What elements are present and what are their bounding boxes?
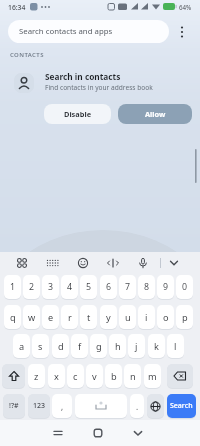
button[interactable]: 0 [176, 275, 193, 299]
button[interactable]: 1 [4, 275, 21, 299]
button[interactable] [147, 394, 164, 418]
button[interactable]: j [128, 334, 145, 358]
staticText: b [111, 370, 117, 383]
button[interactable]: c [67, 364, 84, 388]
button[interactable]: Disable [44, 104, 111, 124]
staticText: n [130, 370, 136, 383]
button[interactable]: q [4, 305, 21, 329]
button[interactable] [104, 254, 122, 272]
button[interactable] [88, 423, 108, 443]
staticText: 16:34 [8, 3, 26, 12]
staticText: h [115, 340, 121, 353]
staticText: r [68, 311, 72, 324]
button[interactable]: w [23, 305, 40, 329]
button[interactable]: 7 [119, 275, 136, 299]
staticText: x [54, 370, 59, 383]
button[interactable]: m [144, 364, 161, 388]
button[interactable]: 6 [100, 275, 117, 299]
staticText: i [145, 311, 148, 324]
staticText: l [174, 340, 177, 353]
staticText: 6 [106, 281, 112, 293]
button[interactable] [176, 25, 188, 39]
staticText: d [58, 340, 64, 353]
staticText: j [135, 340, 138, 353]
button[interactable] [43, 254, 61, 272]
button[interactable]: 2 [23, 275, 40, 299]
button[interactable]: n [124, 364, 141, 388]
button[interactable]: 3 [42, 275, 59, 299]
button[interactable]: a [13, 334, 30, 358]
button[interactable]: h [109, 334, 126, 358]
button[interactable] [2, 364, 25, 388]
button[interactable] [13, 254, 31, 272]
staticText: g [96, 340, 102, 353]
button[interactable]: 5 [80, 275, 97, 299]
button[interactable]: y [100, 305, 117, 329]
button[interactable] [167, 364, 193, 388]
staticText: 4 [67, 281, 73, 293]
button[interactable]: !?# [3, 394, 25, 418]
button[interactable]: d [52, 334, 69, 358]
staticText: 9 [163, 281, 169, 293]
button[interactable]: u [119, 305, 136, 329]
staticText: Search [170, 401, 193, 411]
button[interactable]: 123 [28, 394, 50, 418]
button[interactable]: o [157, 305, 174, 329]
staticText: k [154, 340, 159, 353]
button[interactable]: r [61, 305, 78, 329]
button[interactable]: l [167, 334, 184, 358]
staticText: s [38, 340, 43, 353]
staticText: u [125, 311, 131, 324]
button[interactable]: 4 [61, 275, 78, 299]
staticText: 1 [10, 281, 16, 293]
staticText: a [19, 340, 25, 353]
staticText: Allow [145, 109, 166, 119]
button[interactable]: g [90, 334, 107, 358]
button[interactable]: v [86, 364, 103, 388]
staticText: m [148, 370, 157, 383]
staticText: 7 [125, 281, 131, 293]
button[interactable]: Allow [118, 104, 192, 124]
button[interactable]: b [105, 364, 122, 388]
button[interactable]: 9 [157, 275, 174, 299]
staticText: 64% [179, 3, 192, 11]
staticText: e [48, 311, 54, 324]
button[interactable]: x [48, 364, 65, 388]
button[interactable]: t [80, 305, 97, 329]
staticText: v [92, 370, 97, 383]
button[interactable]: z [28, 364, 45, 388]
button[interactable] [74, 254, 92, 272]
staticText: y [106, 311, 111, 324]
button[interactable]: . [130, 394, 144, 418]
button[interactable]: i [138, 305, 155, 329]
staticText: !?# [9, 401, 19, 411]
staticText: q [10, 311, 16, 324]
button[interactable]: s [32, 334, 49, 358]
button[interactable]: , [52, 394, 72, 418]
button[interactable] [165, 254, 183, 272]
button[interactable]: Search contacts and apps [8, 20, 169, 43]
button[interactable]: Search [167, 394, 196, 418]
staticText: f [78, 340, 82, 353]
button[interactable]: p [176, 305, 193, 329]
staticText: Disable [64, 109, 92, 119]
button[interactable] [48, 423, 68, 443]
staticText: Search in contacts [45, 71, 121, 82]
staticText: Find contacts in your address book [45, 83, 153, 92]
button[interactable] [135, 254, 153, 272]
staticText: o [163, 311, 169, 324]
staticText: 2 [29, 281, 35, 293]
staticText: 123 [33, 401, 46, 411]
staticText: z [34, 370, 39, 383]
staticText: Search contacts and apps [19, 26, 113, 37]
button[interactable] [75, 394, 127, 418]
staticText: c [73, 370, 78, 383]
staticText: CONTACTS [10, 51, 44, 59]
button[interactable] [128, 423, 148, 443]
button[interactable]: f [71, 334, 88, 358]
staticText: 5 [86, 281, 92, 293]
button[interactable]: k [148, 334, 165, 358]
staticText: w [28, 311, 36, 324]
button[interactable]: 8 [138, 275, 155, 299]
button[interactable]: e [42, 305, 59, 329]
